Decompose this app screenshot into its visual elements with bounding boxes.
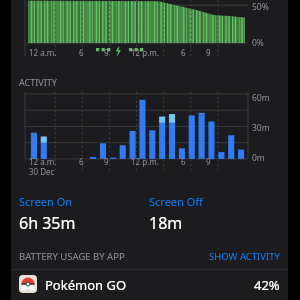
staticText: 30m [252,122,270,134]
staticText: 18m [149,212,183,234]
staticText: 9 [104,47,131,58]
staticText: 9 [206,156,246,167]
staticText: 60m [252,92,270,104]
staticText: 9 [206,47,246,58]
staticText: ACTIVITY [19,76,57,88]
staticText: Pokémon GO [45,276,254,294]
staticText: Screen On [19,194,73,209]
staticText: BATTERY USAGE BY APP [19,250,209,263]
staticText: 0m [252,152,265,164]
staticText: 12 a.m. [29,156,79,167]
staticText: 6 [181,47,206,58]
staticText: 6 [79,156,104,167]
staticText: 6h 35m [19,212,76,234]
staticText: 30 Dec [29,166,55,177]
staticText: 12 p.m. [131,47,181,58]
staticText: 50% [252,1,269,13]
button[interactable]: Pokémon GO icon [11,270,288,300]
staticText: Screen Off [149,194,203,209]
staticText: 6 [79,47,104,58]
other: Pokémon GO icon [19,275,37,293]
staticText: 9 [104,156,131,167]
staticText: 6 [181,156,206,167]
staticText: 42% [254,276,280,294]
staticText: 12 p.m. [131,156,181,167]
staticText: 12 a.m. [29,47,79,58]
button[interactable]: SHOW ACTIVITY [209,250,280,263]
staticText: 0% [252,37,264,49]
staticText: SHOW ACTIVITY [209,250,280,263]
